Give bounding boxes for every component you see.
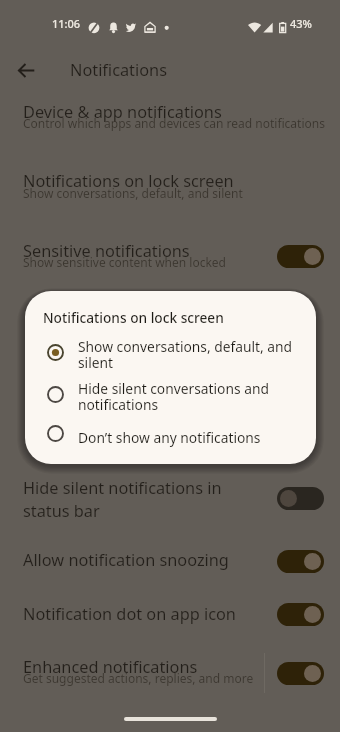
button[interactable]: Don’t show any notifications (25, 414, 316, 454)
button[interactable]: Toggle on (277, 245, 324, 268)
staticText: Hide silent conversations and notificati… (78, 379, 296, 414)
staticText: Show conversations, default, and silent (23, 185, 328, 201)
staticText: Allow notification snoozing (23, 549, 243, 571)
staticText: Notifications on lock screen (43, 308, 224, 327)
button[interactable]: Toggle on (277, 603, 324, 626)
staticText: Notifications on lock screen (23, 170, 328, 192)
staticText: Show sensitive content when locked (23, 254, 328, 270)
button[interactable]: Toggle off (277, 487, 324, 510)
staticText: Sensitive notifications (23, 240, 328, 262)
button[interactable]: Toggle on (277, 550, 324, 573)
staticText: Don’t show any notifications (78, 428, 296, 447)
staticText: 43% (290, 16, 312, 31)
button[interactable]: Hide silent conversations and notificati… (25, 375, 316, 415)
staticText: Show conversations, default, and silent (78, 337, 296, 372)
staticText: Notifications (70, 59, 167, 81)
staticText: Hide silent notifications in status bar (23, 477, 243, 522)
button[interactable]: Toggle on (277, 662, 324, 685)
staticText: Control which apps and devices can read … (23, 115, 328, 131)
staticText: Get suggested actions, replies, and more (23, 670, 273, 686)
staticText: Device & app notifications (23, 101, 328, 123)
staticText: 11:06 (52, 16, 81, 31)
staticText: Enhanced notifications (23, 656, 243, 678)
button[interactable]: Show conversations, default, and silent (25, 333, 316, 373)
button[interactable]: Back (10, 54, 42, 86)
staticText: Notification dot on app icon (23, 603, 243, 625)
